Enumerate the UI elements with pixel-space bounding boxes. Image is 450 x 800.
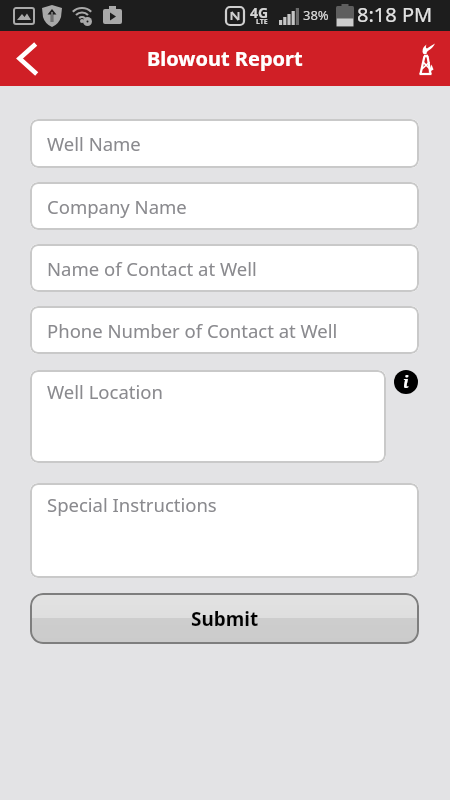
staticText: 8:18 PM xyxy=(357,1,433,28)
staticText: Blowout Report xyxy=(147,45,303,72)
button[interactable]: i xyxy=(394,370,418,394)
button[interactable]: Well Name xyxy=(30,119,419,168)
button[interactable]: Well Location xyxy=(30,370,386,463)
staticText: 4G xyxy=(250,3,269,22)
staticText: i xyxy=(403,371,409,393)
staticText: Name of Contact at Well xyxy=(47,256,257,281)
button[interactable] xyxy=(0,31,52,86)
staticText: 38% xyxy=(303,6,329,24)
staticText: Phone Number of Contact at Well xyxy=(47,318,338,343)
button[interactable]: Name of Contact at Well xyxy=(30,244,419,292)
staticText: Company Name xyxy=(47,194,187,219)
staticText: Well Location xyxy=(47,379,163,404)
button[interactable] xyxy=(400,31,450,86)
staticText: Well Name xyxy=(47,131,141,156)
button[interactable]: Company Name xyxy=(30,182,419,230)
staticText: Special Instructions xyxy=(47,492,217,517)
button[interactable]: Phone Number of Contact at Well xyxy=(30,306,419,354)
button[interactable]: Submit xyxy=(30,593,419,644)
staticText: LTE xyxy=(256,17,268,27)
staticText: Submit xyxy=(191,606,259,632)
button[interactable]: Special Instructions xyxy=(30,483,419,578)
